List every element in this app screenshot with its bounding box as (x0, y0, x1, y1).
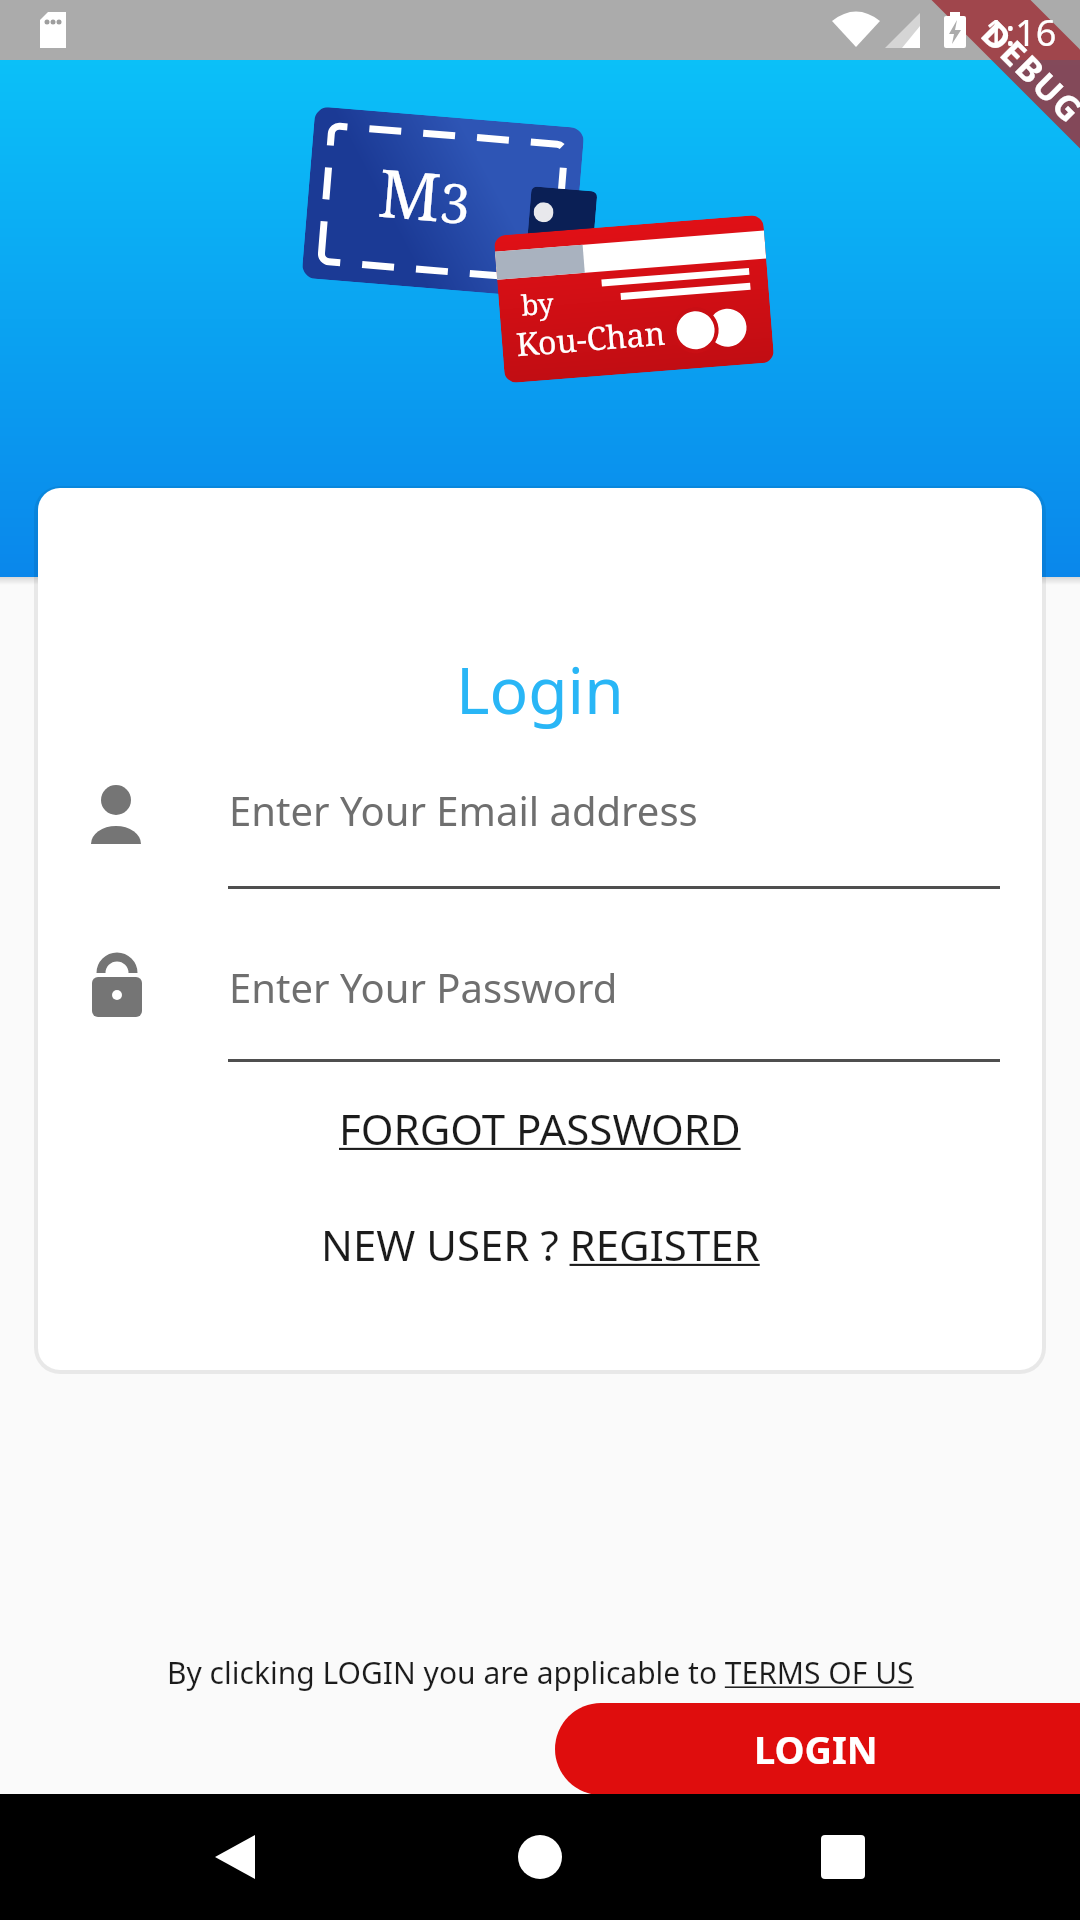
staticText: LOGIN (754, 1723, 878, 1775)
button[interactable]: FORGOT PASSWORD (339, 1100, 741, 1157)
staticText: DEBUG (972, 11, 1080, 133)
button[interactable] (187, 1827, 287, 1887)
staticText: Enter Your Email address (229, 783, 698, 837)
button[interactable]: LOGIN (555, 1703, 1080, 1795)
staticText: Enter Your Password (229, 960, 618, 1014)
staticText: M3 (375, 146, 475, 243)
staticText: 1:16 (985, 8, 1057, 57)
button[interactable] (88, 944, 1000, 1062)
staticText: Kou-Chan (514, 311, 667, 366)
button[interactable] (88, 768, 1000, 890)
button[interactable]: NEW USER ? REGISTER (321, 1216, 760, 1273)
button[interactable] (490, 1827, 590, 1887)
staticText: by (520, 283, 555, 324)
staticText: Login (456, 646, 624, 733)
button[interactable]: By clicking LOGIN you are applicable to … (167, 1652, 914, 1693)
button[interactable] (793, 1827, 893, 1887)
